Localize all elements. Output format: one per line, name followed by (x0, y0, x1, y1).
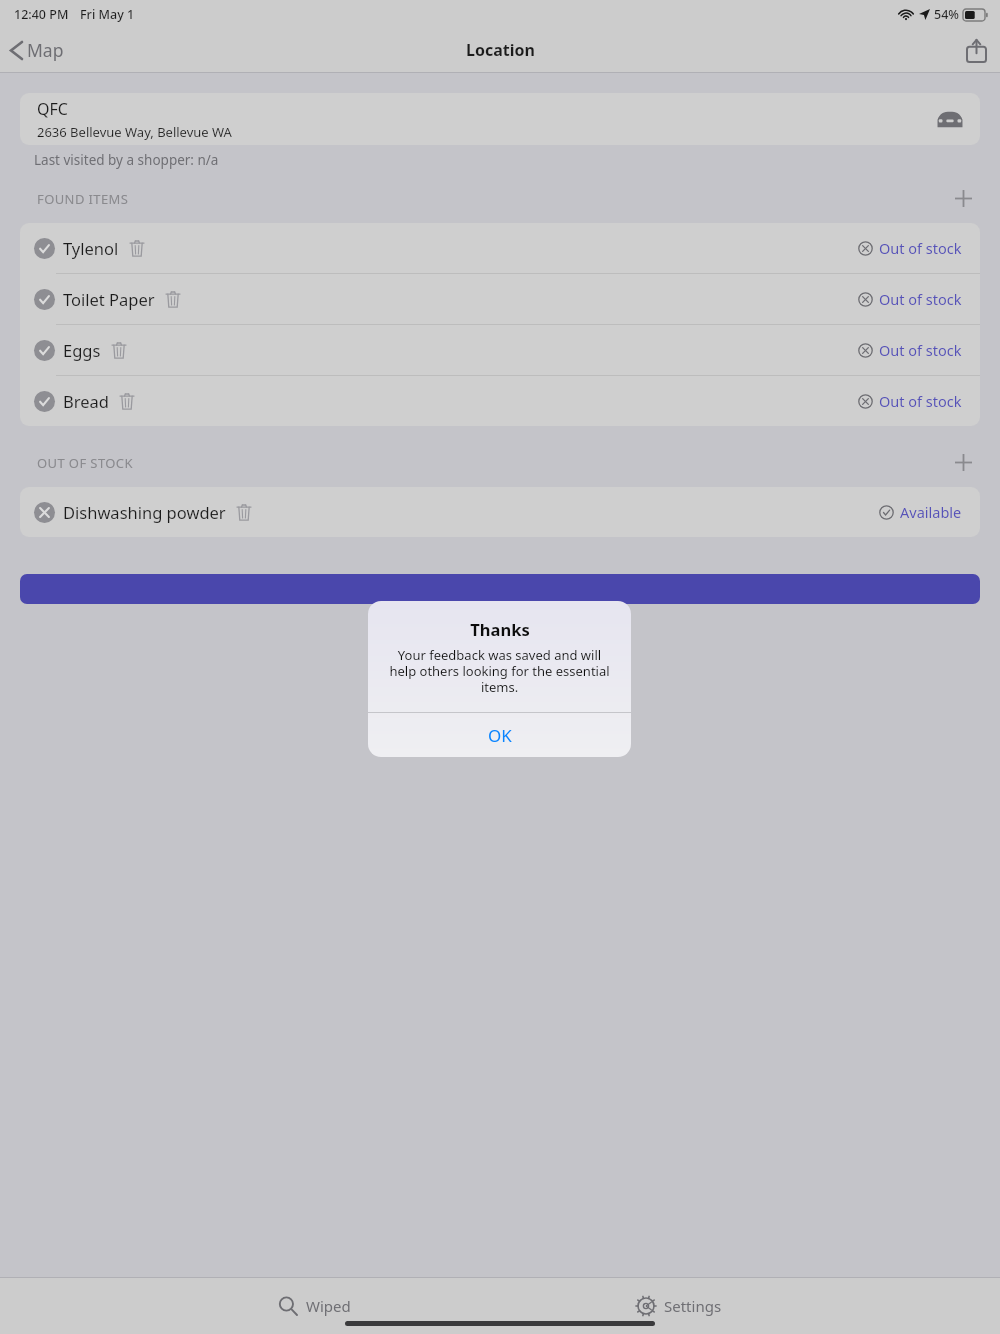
button[interactable]: QFC (20, 93, 980, 145)
button[interactable]: Delete Tylenol (127, 237, 147, 260)
staticText: Out of stock (879, 391, 962, 411)
button[interactable]: Map (0, 32, 74, 68)
staticText: Dishwashing powder (63, 501, 226, 523)
staticText: 12:40 PM (14, 6, 69, 23)
button[interactable]: Out of stock (854, 234, 966, 262)
staticText: 54% (934, 6, 959, 23)
staticText: Out of stock (879, 238, 962, 258)
button[interactable]: Dishwashing powder (20, 487, 980, 537)
button[interactable]: Out of stock (854, 387, 966, 415)
staticText: Map (27, 38, 64, 62)
button[interactable]: Settings (628, 1288, 730, 1324)
button[interactable]: Add item (947, 182, 980, 215)
staticText: Thanks (470, 618, 530, 640)
staticText: Eggs (63, 339, 101, 361)
button[interactable]: Delete Dishwashing powder (234, 501, 254, 524)
button[interactable]: Out of stock (854, 336, 966, 364)
button[interactable]: Share (953, 31, 1000, 70)
button[interactable]: Toilet Paper (20, 274, 980, 324)
button[interactable]: Delete Eggs (109, 339, 129, 362)
button[interactable]: Delete Toilet Paper (163, 288, 183, 311)
button[interactable]: Eggs (20, 325, 980, 375)
button[interactable]: Submit feedback (20, 574, 980, 604)
staticText: Out of stock (879, 289, 962, 309)
staticText: Bread (63, 390, 109, 412)
staticText: Last visited by a shopper: n/a (34, 151, 219, 169)
button[interactable]: Wiped (270, 1288, 359, 1324)
button[interactable]: Available (875, 498, 966, 526)
staticText: OK (488, 724, 512, 747)
button[interactable]: OK (368, 713, 631, 757)
button[interactable]: Delete Bread (117, 390, 137, 413)
staticText: Location (466, 39, 535, 61)
staticText: Toilet Paper (63, 288, 155, 310)
button[interactable]: Add item (947, 446, 980, 479)
staticText: Settings (664, 1296, 722, 1316)
staticText: Fri May 1 (80, 6, 135, 23)
other: Directions (937, 111, 963, 128)
staticText: Available (900, 502, 962, 522)
staticText: Your feedback was saved and will help ot… (384, 646, 615, 695)
staticText: 2636 Bellevue Way, Bellevue WA (37, 123, 232, 141)
button[interactable]: Bread (20, 376, 980, 426)
button[interactable]: Tylenol (20, 223, 980, 273)
button[interactable]: Out of stock (854, 285, 966, 313)
staticText: FOUND ITEMS (37, 190, 129, 208)
staticText: Wiped (306, 1296, 351, 1316)
staticText: OUT OF STOCK (37, 454, 133, 472)
staticText: Tylenol (63, 237, 119, 259)
staticText: Out of stock (879, 340, 962, 360)
staticText: QFC (37, 98, 68, 120)
